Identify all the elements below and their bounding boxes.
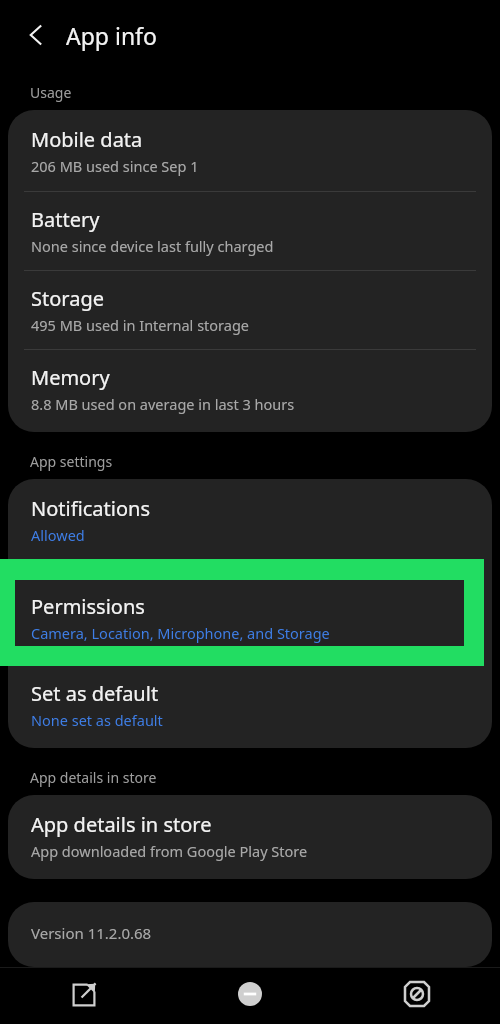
staticText: 8.8 MB used on average in last 3 hours <box>31 394 295 414</box>
staticText: App details in store <box>30 768 157 787</box>
staticText: Version 11.2.0.68 <box>31 923 152 943</box>
staticText: Set as default <box>31 680 159 707</box>
staticText: 206 MB used since Sep 1 <box>31 156 199 176</box>
staticText: Allowed <box>31 525 85 545</box>
button[interactable]: Battery <box>8 192 492 270</box>
staticText: Usage <box>30 83 72 102</box>
staticText: App settings <box>30 452 113 471</box>
button[interactable]: Notifications <box>8 479 492 559</box>
staticText: Notifications <box>31 495 150 522</box>
button[interactable]: Memory <box>8 350 492 432</box>
button[interactable]: Set as default <box>8 666 492 748</box>
staticText: Battery <box>31 206 100 233</box>
staticText: App details in store <box>31 811 212 838</box>
staticText: Camera, Location, Microphone, and Storag… <box>31 623 330 643</box>
button[interactable]: Back <box>16 15 56 55</box>
button[interactable]: Version 11.2.0.68 <box>8 902 492 967</box>
staticText: App info <box>66 20 157 51</box>
staticText: Mobile data <box>31 126 143 153</box>
staticText: None since device last fully charged <box>31 236 274 256</box>
button[interactable]: Force stop <box>334 968 500 1024</box>
button[interactable]: Storage <box>8 271 492 349</box>
button[interactable]: Mobile data <box>8 110 492 191</box>
button[interactable]: Permissions <box>15 580 464 646</box>
button[interactable]: App details in store <box>8 795 492 879</box>
staticText: 495 MB used in Internal storage <box>31 315 250 335</box>
staticText: Permissions <box>31 593 145 620</box>
staticText: Memory <box>31 364 110 391</box>
staticText: Storage <box>31 285 104 312</box>
button[interactable]: Uninstall <box>167 968 333 1024</box>
staticText: App downloaded from Google Play Store <box>31 841 308 861</box>
button[interactable]: Open <box>1 968 167 1024</box>
staticText: None set as default <box>31 710 163 730</box>
